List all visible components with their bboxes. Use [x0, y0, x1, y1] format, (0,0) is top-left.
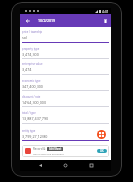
staticText: discount / rate: [22, 95, 41, 99]
button[interactable]: Save: [97, 130, 106, 139]
button[interactable]: Back: [20, 14, 36, 27]
staticText: property type: [22, 47, 40, 51]
staticText: 3,799,27,12/80: [22, 134, 48, 139]
staticText: 13,887,437,790: [22, 116, 49, 121]
button[interactable]: economic type: [22, 78, 109, 91]
staticText: 10/2/2019: [38, 18, 56, 23]
button[interactable]: property type: [22, 46, 109, 59]
staticText: 14%4,300,000: [22, 100, 47, 105]
button[interactable]: Record &: [25, 145, 107, 157]
staticText: economic type: [22, 79, 41, 83]
staticText: enterprise value: [22, 62, 43, 66]
button[interactable]: discount / rate: [22, 94, 109, 107]
staticText: entity type: [22, 129, 36, 133]
button[interactable]: Back: [35, 160, 46, 171]
staticText: tap to open the document: [33, 152, 64, 155]
staticText: 347,400,300: [22, 84, 43, 89]
staticText: Record &: [33, 147, 47, 151]
staticText: OK: [100, 149, 104, 153]
staticText: total / type: [22, 111, 36, 115]
staticText: sol: [22, 35, 27, 40]
button[interactable]: OK: [97, 149, 107, 153]
staticText: 3,474,300: [22, 52, 39, 57]
button[interactable]: enterprise value: [22, 61, 109, 74]
button[interactable]: Home: [60, 160, 71, 171]
staticText: 3,474: [22, 67, 32, 72]
button[interactable]: entity type: [22, 128, 109, 141]
staticText: price / township: [22, 30, 43, 34]
button[interactable]: Recents: [86, 160, 97, 171]
staticText: Edit Sheet: [49, 147, 62, 151]
staticText: 4:31: [102, 9, 109, 14]
button[interactable]: total / type: [22, 110, 109, 123]
button[interactable]: Delete: [100, 14, 111, 27]
button[interactable]: price / township: [22, 29, 109, 42]
